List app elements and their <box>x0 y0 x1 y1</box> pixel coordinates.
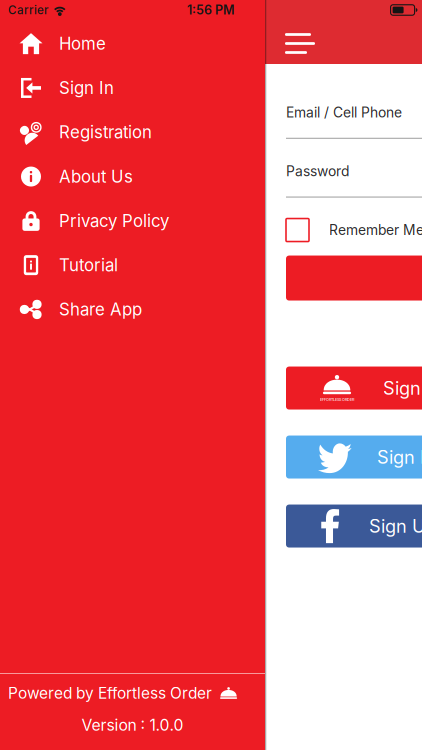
staticText: Sign Up <box>369 515 422 537</box>
button[interactable]: Sign In <box>0 66 265 110</box>
button[interactable]: EFFORTLESS ORDER <box>286 367 422 410</box>
staticText: Powered by Effortless Order <box>8 684 212 702</box>
staticText: EFFORTLESS ORDER <box>320 397 354 402</box>
button[interactable]: Menu <box>277 25 327 62</box>
button[interactable]: Tutorial <box>0 243 265 287</box>
staticText: About Us <box>59 166 133 187</box>
button[interactable]: Privacy Policy <box>0 199 265 243</box>
button[interactable]: Remember Me <box>286 219 309 242</box>
staticText: Home <box>59 33 106 54</box>
staticText: 1:56 PM <box>187 2 235 18</box>
staticText: Privacy Policy <box>59 211 169 231</box>
staticText: Email / Cell Phone <box>286 104 402 121</box>
staticText: Registration <box>59 122 152 142</box>
button[interactable]: Share App <box>0 287 265 332</box>
button[interactable]: Sign In <box>286 436 422 479</box>
staticText: Sign In <box>383 377 422 399</box>
button[interactable]: LOGIN <box>286 256 422 301</box>
button[interactable]: Registration <box>0 110 265 154</box>
staticText: Carrier <box>8 3 48 17</box>
staticText: Share App <box>59 299 142 320</box>
staticText: Tutorial <box>59 255 118 275</box>
staticText: Remember Me <box>329 222 422 238</box>
staticText: Sign In <box>377 446 422 468</box>
button[interactable]: About Us <box>0 154 265 199</box>
staticText: Password <box>286 163 349 180</box>
button[interactable]: Sign Up <box>286 505 422 548</box>
staticText: Sign In <box>59 78 114 98</box>
staticText: Version : 1.0.0 <box>81 715 183 734</box>
button[interactable]: Home <box>0 21 265 66</box>
